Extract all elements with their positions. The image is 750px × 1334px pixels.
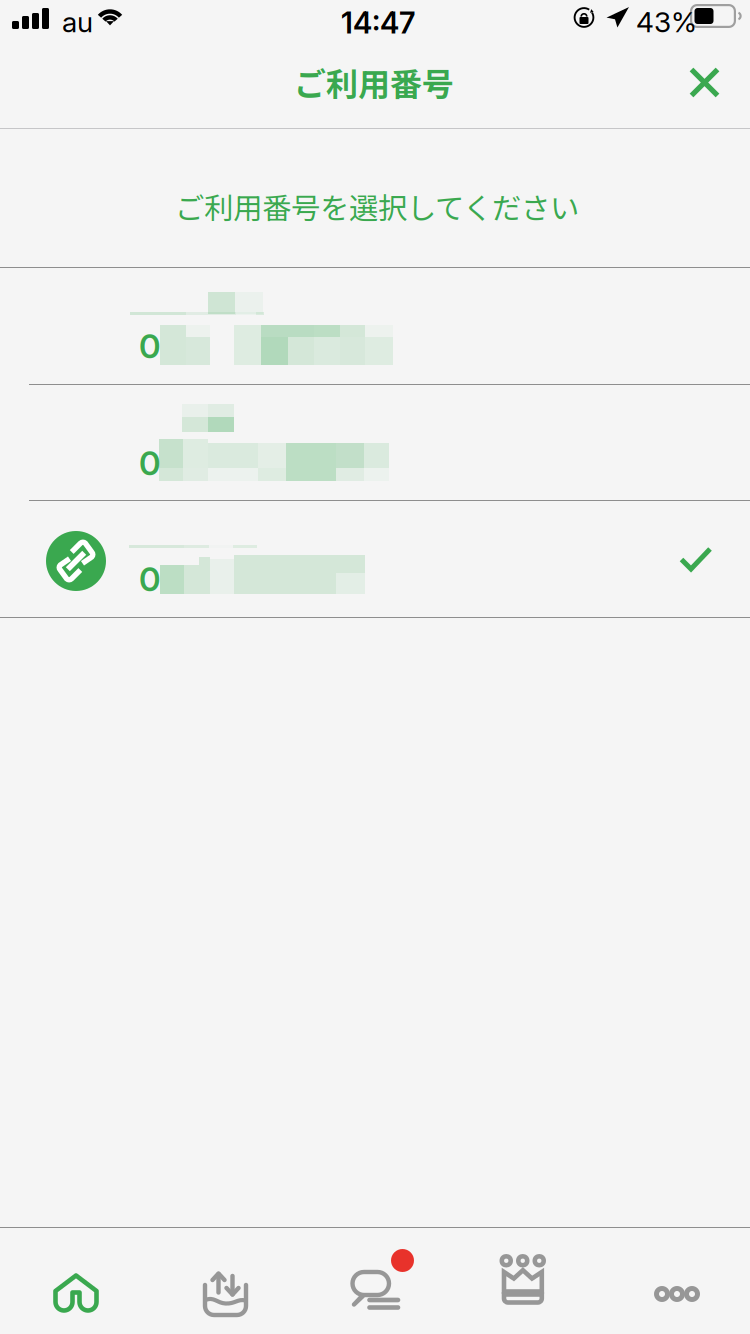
staticText: au: [62, 5, 93, 39]
staticText: 0: [139, 443, 161, 483]
staticText: 43%: [636, 5, 697, 39]
button[interactable]: Rewards: [450, 1228, 600, 1334]
button[interactable]: More: [600, 1228, 750, 1334]
button[interactable]: Home: [0, 1228, 150, 1334]
staticText: 0: [139, 559, 161, 599]
button[interactable]: 0: [0, 268, 750, 384]
button[interactable]: Messages: [300, 1228, 450, 1334]
button[interactable]: 0: [0, 385, 750, 501]
staticText: 0: [139, 326, 161, 366]
button[interactable]: 0: [0, 501, 750, 617]
staticText: ご利用番号を選択してください: [175, 185, 579, 227]
button[interactable]: Transfer: [150, 1228, 300, 1334]
button[interactable]: Close: [662, 54, 750, 128]
staticText: ご利用番号: [294, 59, 454, 105]
staticText: 14:47: [341, 5, 415, 40]
